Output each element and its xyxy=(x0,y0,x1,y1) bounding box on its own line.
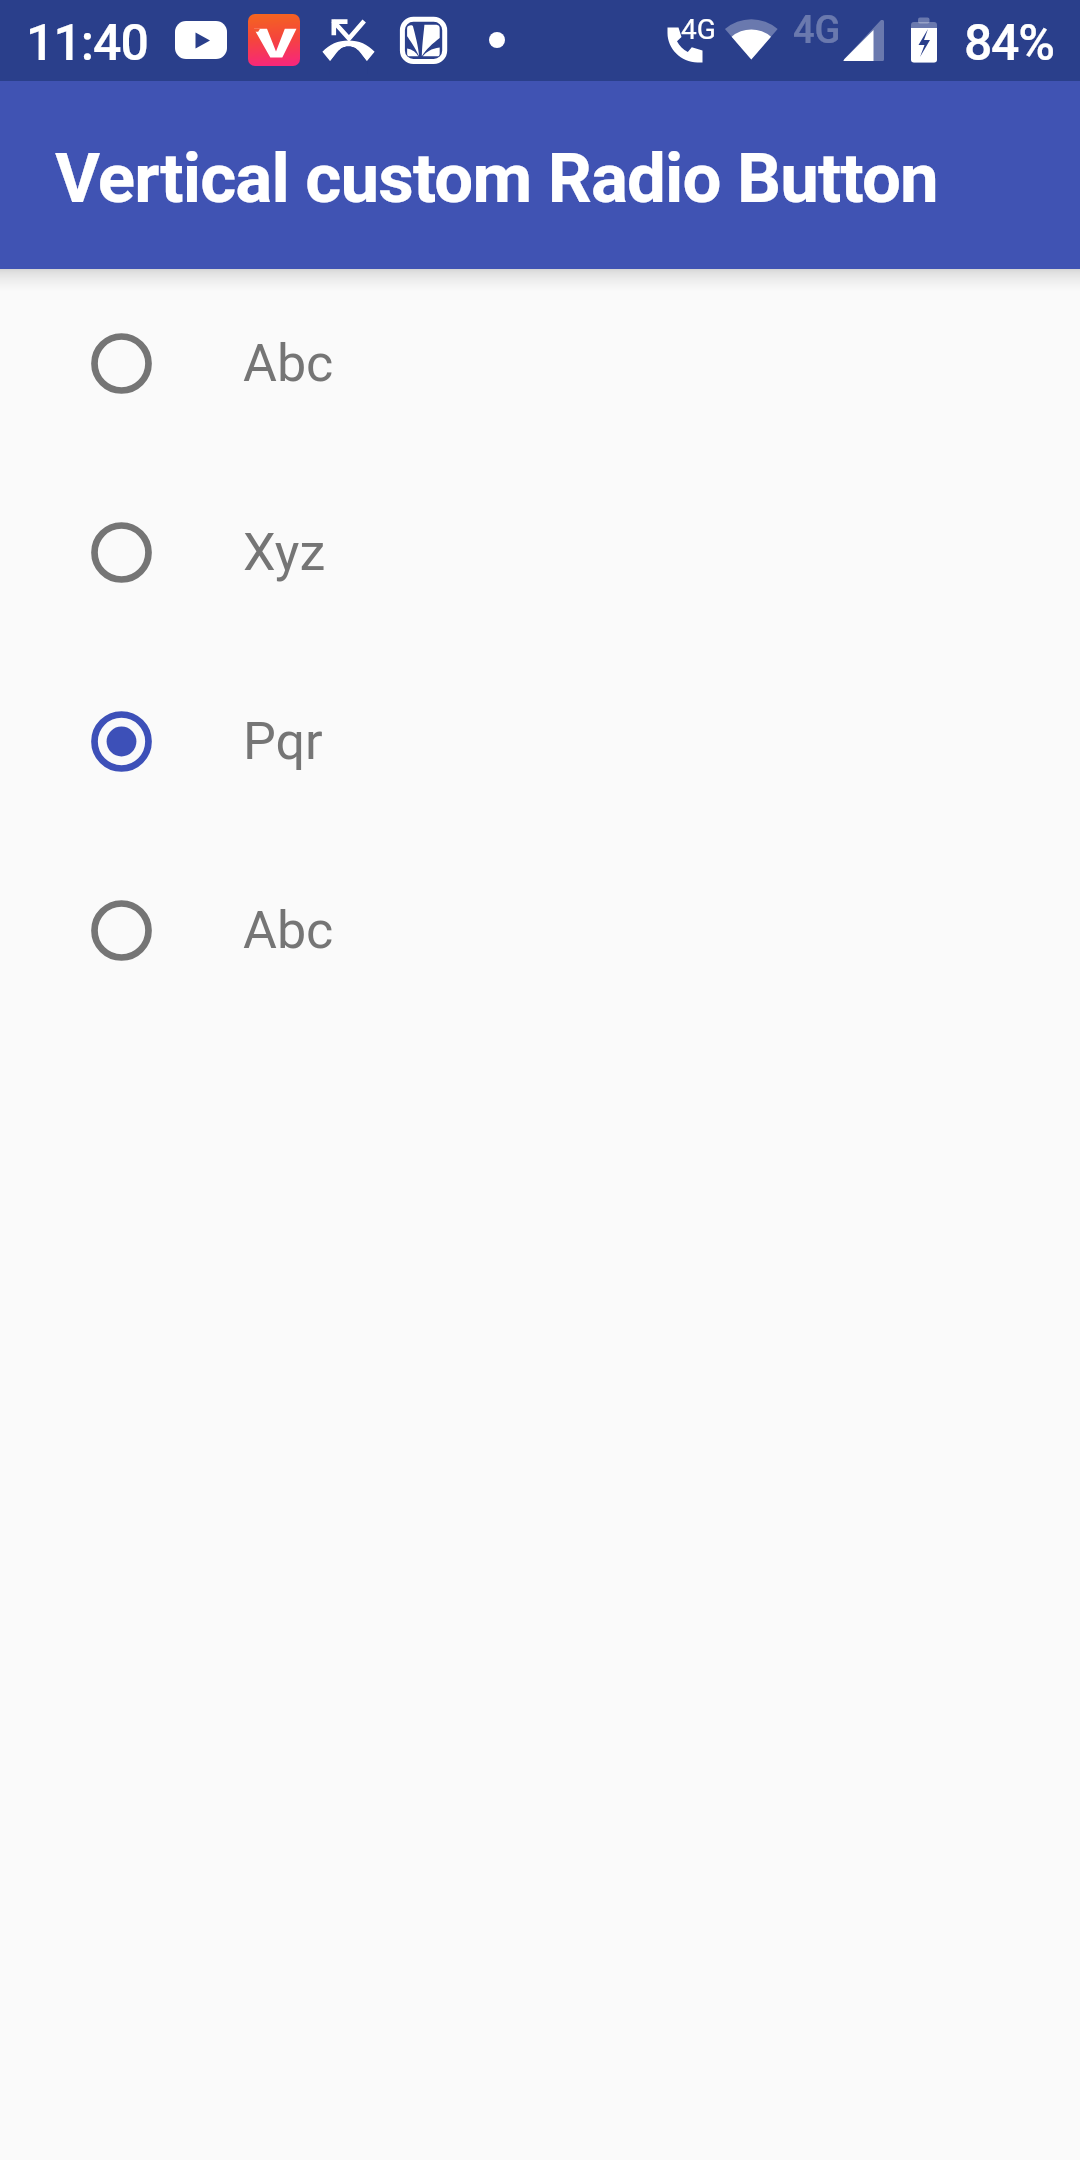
staticText: Pqr xyxy=(243,711,323,772)
staticText: Abc xyxy=(243,900,334,961)
staticText: Abc xyxy=(243,333,334,394)
button[interactable]: Abc, not selected xyxy=(0,836,1080,1025)
staticText: 4G xyxy=(681,13,716,46)
staticText: 4G xyxy=(793,8,841,53)
button[interactable]: Xyz, not selected xyxy=(0,458,1080,647)
staticText: 84% xyxy=(964,14,1054,73)
staticText: Xyz xyxy=(243,522,326,583)
staticText: 11:40 xyxy=(26,14,148,73)
staticText: Vertical custom Radio Button xyxy=(55,138,938,219)
button[interactable]: Pqr, selected xyxy=(0,647,1080,836)
button[interactable]: Abc, not selected xyxy=(0,269,1080,458)
